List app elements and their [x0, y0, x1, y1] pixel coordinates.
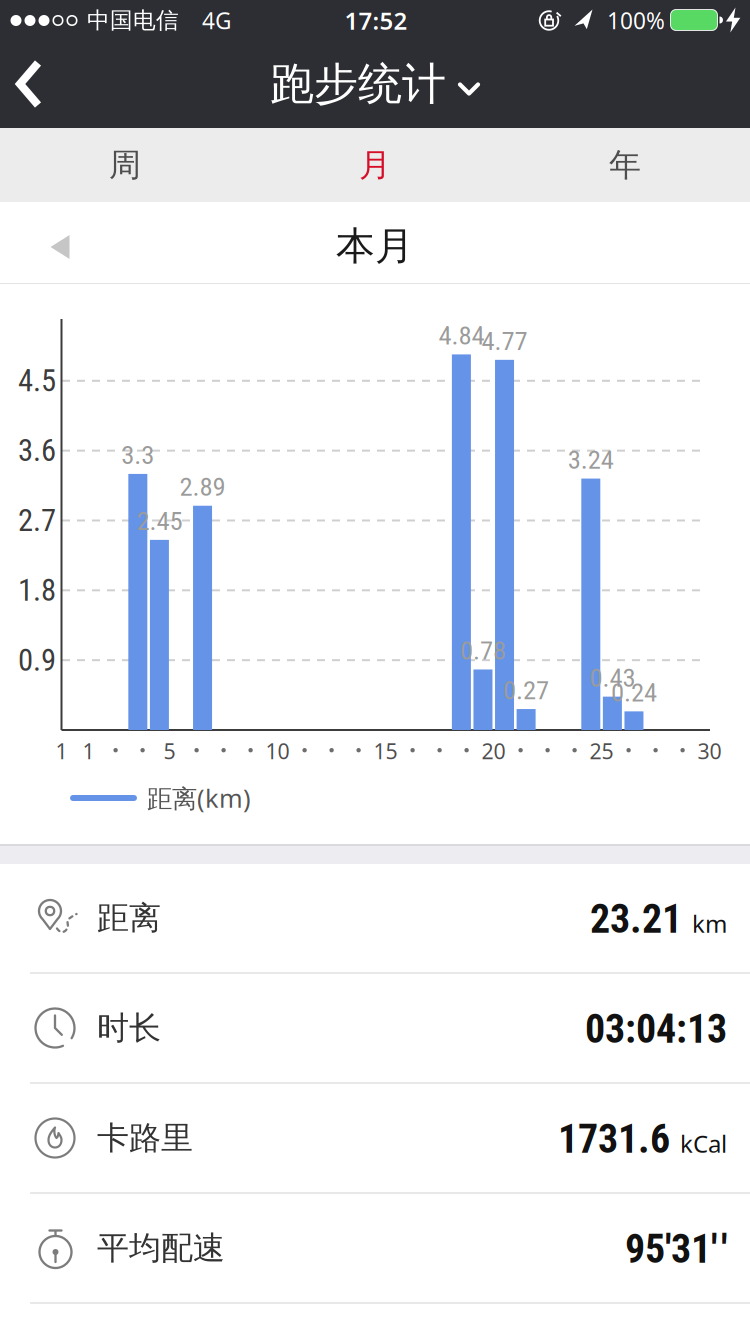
- staticText: 年: [609, 145, 641, 185]
- staticText: 100%: [607, 5, 665, 35]
- staticText: 0.24: [611, 677, 657, 708]
- staticText: 1: [56, 737, 68, 765]
- staticText: 时长: [97, 1008, 161, 1048]
- staticText: 2.89: [180, 471, 226, 502]
- staticText: 20: [482, 737, 506, 765]
- staticText: 17:52: [344, 5, 407, 36]
- button[interactable]: 上个月: [30, 212, 90, 282]
- staticText: 4.5: [18, 363, 56, 399]
- staticText: 卡路里: [97, 1118, 193, 1158]
- staticText: 4.84: [438, 320, 484, 351]
- staticText: 3.3: [121, 439, 154, 471]
- staticText: 3.6: [18, 433, 56, 469]
- staticText: 1731.6: [558, 1116, 670, 1162]
- staticText: 15: [374, 737, 398, 765]
- staticText: 平均配速: [97, 1228, 225, 1268]
- staticText: 跑步统计: [270, 57, 446, 111]
- staticText: 本月: [336, 222, 414, 270]
- staticText: 1: [83, 737, 95, 765]
- staticText: 0.43: [589, 662, 635, 693]
- staticText: 10: [266, 737, 290, 765]
- staticText: 2.45: [136, 505, 182, 537]
- staticText: 4G: [202, 5, 232, 35]
- button[interactable]: 月: [250, 128, 500, 202]
- staticText: 0.9: [18, 642, 56, 678]
- staticText: 30: [698, 737, 722, 765]
- staticText: 03:04:13: [585, 1006, 727, 1052]
- staticText: 95'31' ': [625, 1226, 727, 1272]
- button[interactable]: 年: [500, 128, 750, 202]
- staticText: 5: [164, 737, 176, 765]
- staticText: 25: [590, 737, 614, 765]
- button[interactable]: 跑步统计: [270, 57, 480, 111]
- button[interactable]: Back: [0, 40, 60, 128]
- staticText: 1.8: [18, 572, 56, 608]
- staticText: 2.7: [18, 502, 56, 538]
- staticText: 4.77: [481, 325, 527, 356]
- staticText: 周: [109, 145, 141, 185]
- staticText: 距离: [97, 898, 161, 938]
- staticText: 距离(km): [147, 781, 251, 815]
- staticText: 23.21: [590, 896, 682, 942]
- staticText: km: [692, 908, 727, 939]
- staticText: 3.24: [568, 444, 614, 475]
- staticText: kCal: [680, 1128, 727, 1159]
- staticText: 中国电信: [87, 7, 179, 34]
- button[interactable]: 周: [0, 128, 250, 202]
- staticText: 月: [359, 145, 391, 185]
- staticText: 0.27: [503, 674, 549, 706]
- staticText: 0.78: [460, 635, 506, 666]
